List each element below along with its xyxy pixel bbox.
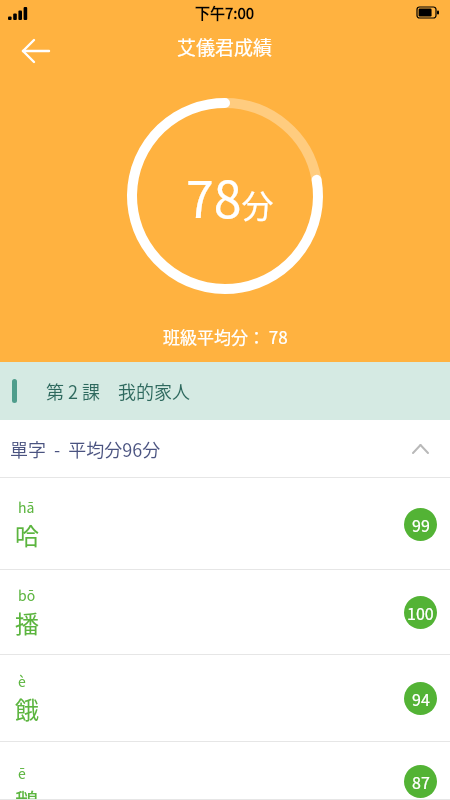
staticText: 100 <box>407 601 434 624</box>
staticText: 下午7:00 <box>195 2 255 24</box>
staticText: 87 <box>412 770 430 793</box>
staticText: 播 <box>15 605 39 640</box>
button[interactable]: è <box>0 655 450 742</box>
staticText: 哈 <box>15 517 39 552</box>
staticText: 艾儀君成績 <box>177 33 273 61</box>
staticText: è <box>18 671 26 691</box>
staticText: bō <box>18 585 36 605</box>
button[interactable]: bō <box>0 570 450 655</box>
staticText: 94 <box>412 687 430 710</box>
staticText: 第 2 課 我的家人 <box>46 378 191 404</box>
button[interactable]: hā <box>0 478 450 570</box>
staticText: 單字 - 平均分96分 <box>10 436 161 462</box>
button[interactable]: ē <box>0 742 450 800</box>
button[interactable] <box>18 33 54 69</box>
staticText: 班級平均分： 78 <box>163 324 288 349</box>
staticText: 99 <box>412 513 430 536</box>
staticText: hā <box>18 497 35 517</box>
button[interactable]: 第 2 課 我的家人 <box>0 362 450 420</box>
staticText: 鵝 <box>15 783 39 800</box>
button[interactable]: 單字 - 平均分96分 <box>0 420 450 478</box>
staticText: 餓 <box>15 691 39 726</box>
staticText: 78分 <box>186 160 274 232</box>
staticText: ē <box>18 763 26 783</box>
